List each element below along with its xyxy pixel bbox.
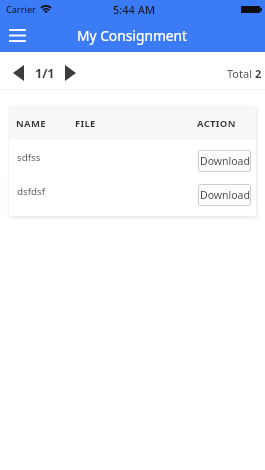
staticText: FILE [75, 117, 96, 130]
staticText: 1/1 [35, 65, 55, 82]
button[interactable]: Download [198, 184, 251, 206]
button[interactable]: Open navigation menu [4, 22, 30, 48]
button[interactable]: Download [198, 150, 251, 172]
staticText: 5:44 AM [113, 2, 156, 17]
staticText: Total [227, 66, 255, 81]
staticText: ACTION [197, 117, 236, 130]
staticText: Download [200, 154, 250, 168]
button[interactable]: Previous page [7, 62, 29, 84]
staticText: dsfdsf [17, 185, 46, 198]
staticText: NAME [16, 117, 46, 130]
staticText: Download [200, 188, 250, 202]
staticText: sdfss [17, 151, 41, 164]
staticText: Carrier [6, 3, 36, 15]
button[interactable]: Next page [59, 62, 81, 84]
staticText: 2 [255, 66, 262, 81]
staticText: My Consignment [77, 26, 188, 45]
